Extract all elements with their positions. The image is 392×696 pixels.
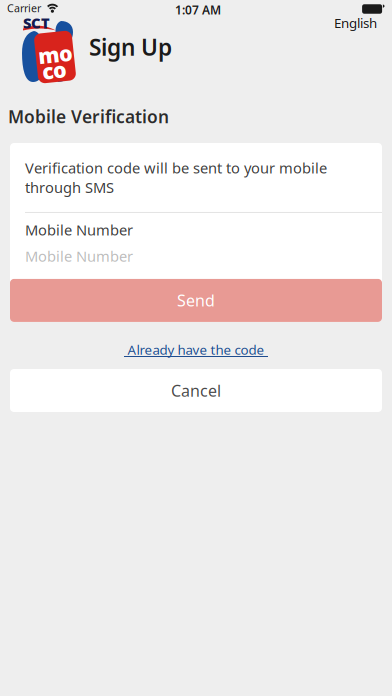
staticText: Mobile Number (25, 246, 133, 266)
staticText: Carrier (7, 1, 41, 15)
staticText: Verification code will be sent to your m… (25, 158, 327, 197)
button[interactable]: Already have the code (121, 343, 271, 357)
staticText: Already have the code (127, 341, 264, 358)
staticText: Cancel (171, 380, 221, 401)
button[interactable]: Cancel (10, 369, 382, 412)
staticText: English (334, 14, 377, 32)
staticText: 1:07 AM (175, 2, 221, 18)
staticText: mo (38, 40, 73, 68)
button[interactable]: Mobile Number (10, 213, 382, 279)
button[interactable]: Send (10, 279, 382, 322)
staticText: Send (177, 290, 215, 311)
staticText: SCT (23, 13, 50, 32)
staticText: Mobile Verification (8, 105, 169, 128)
staticText: Mobile Number (25, 220, 133, 239)
staticText: co (42, 56, 67, 84)
button[interactable]: English (330, 12, 381, 34)
staticText: Sign Up (89, 32, 172, 62)
